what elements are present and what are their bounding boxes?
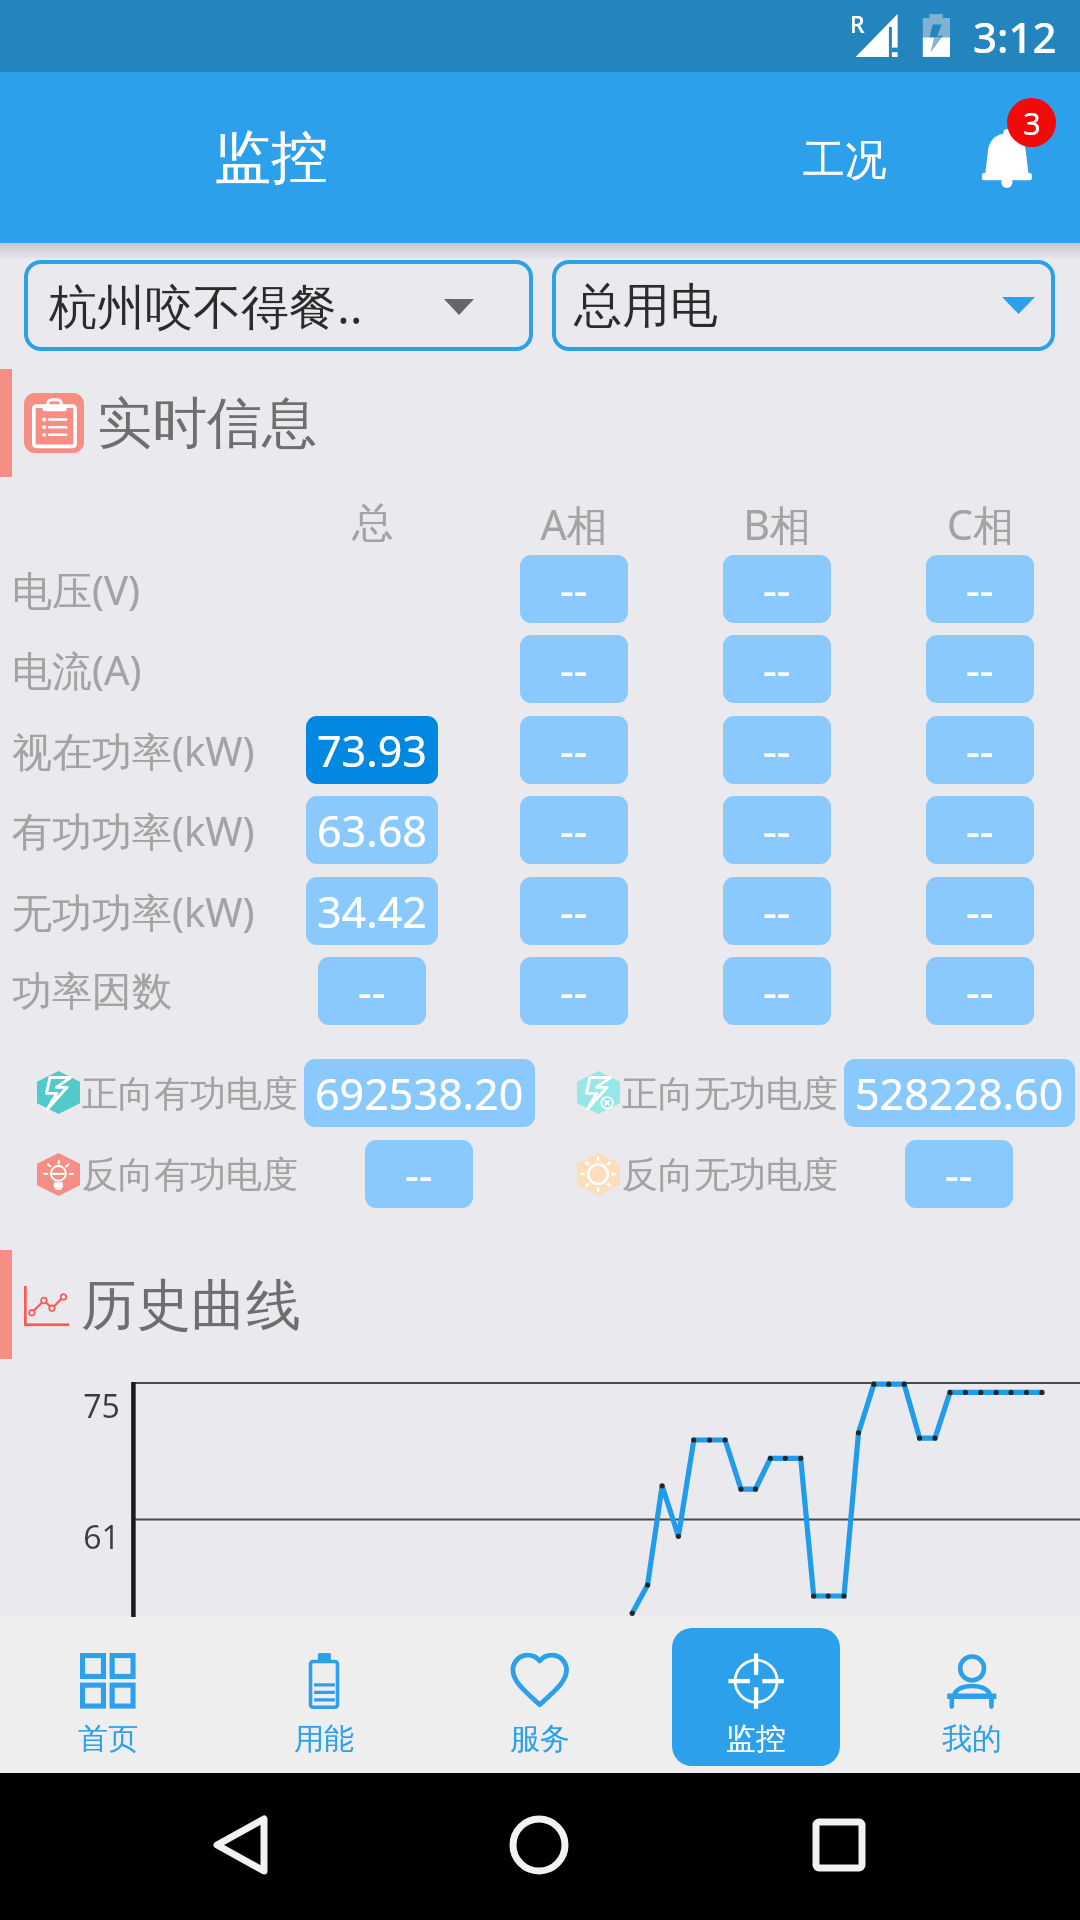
staticText: 首页 [78,1720,138,1758]
staticText: 反向有功电度 [82,1152,298,1197]
staticText: 服务 [510,1720,570,1758]
staticText: -- [560,721,588,780]
staticText: C相 [947,496,1014,552]
staticText: -- [945,1145,973,1204]
staticText: -- [560,962,588,1021]
staticText: 3:12 [973,8,1057,65]
button[interactable]: 首页 [24,1628,192,1766]
staticText: 61 [83,1515,120,1559]
button[interactable]: 用能 [240,1628,408,1766]
button[interactable]: 工况 [772,93,918,227]
button[interactable]: 监控 [672,1628,840,1766]
staticText: 有功功率(kW) [12,803,255,858]
staticText: 电流(A) [12,642,142,697]
staticText: 用能 [294,1720,354,1758]
staticText: 75 [83,1384,120,1428]
staticText: -- [763,801,791,860]
staticText: 正向无功电度 [622,1071,838,1116]
staticText: 工况 [803,134,887,187]
button[interactable]: 我的 [888,1628,1056,1766]
staticText: 正向有功电度 [82,1071,298,1116]
staticText: 监控 [726,1720,786,1758]
staticText: -- [763,882,791,941]
staticText: 功率因数 [12,966,172,1016]
staticText: 杭州咬不得餐.. [49,273,363,339]
staticText: B相 [743,496,811,552]
staticText: -- [763,721,791,780]
staticText: -- [966,560,994,619]
staticText: 528228.60 [855,1064,1064,1123]
staticText: -- [763,640,791,699]
staticText: 无功功率(kW) [12,884,255,939]
staticText: 实时信息 [97,389,317,458]
staticText: -- [966,640,994,699]
staticText: 监控 [214,122,328,194]
staticText: -- [560,560,588,619]
staticText: 反向无功电度 [622,1152,838,1197]
staticText: 63.68 [317,801,427,860]
staticText: -- [405,1145,433,1204]
button[interactable]: Home [479,1785,599,1905]
staticText: -- [966,882,994,941]
staticText: -- [763,560,791,619]
staticText: 34.42 [317,882,427,941]
staticText: 我的 [942,1720,1002,1758]
staticText: 历史曲线 [81,1271,301,1340]
staticText: 3 [1023,102,1041,144]
staticText: -- [560,640,588,699]
staticText: -- [560,882,588,941]
staticText: -- [966,721,994,780]
staticText: 电压(V) [12,562,140,617]
staticText: R [850,8,865,39]
staticText: 总 [352,498,393,550]
staticText: 总用电 [574,276,718,336]
staticText: -- [358,962,386,1021]
staticText: -- [966,801,994,860]
button[interactable]: 服务 [456,1628,624,1766]
button[interactable]: Recent apps [779,1785,899,1905]
button[interactable]: 杭州咬不得餐.. [24,260,533,351]
staticText: 视在功率(kW) [12,723,255,778]
button[interactable]: Notifications [950,75,1080,240]
staticText: -- [560,801,588,860]
staticText: -- [966,962,994,1021]
button[interactable]: 总用电 [552,260,1055,351]
staticText: -- [763,962,791,1021]
button[interactable]: Back [180,1785,300,1905]
staticText: 73.93 [317,721,427,780]
staticText: A相 [540,496,608,552]
staticText: 692538.20 [315,1064,524,1123]
